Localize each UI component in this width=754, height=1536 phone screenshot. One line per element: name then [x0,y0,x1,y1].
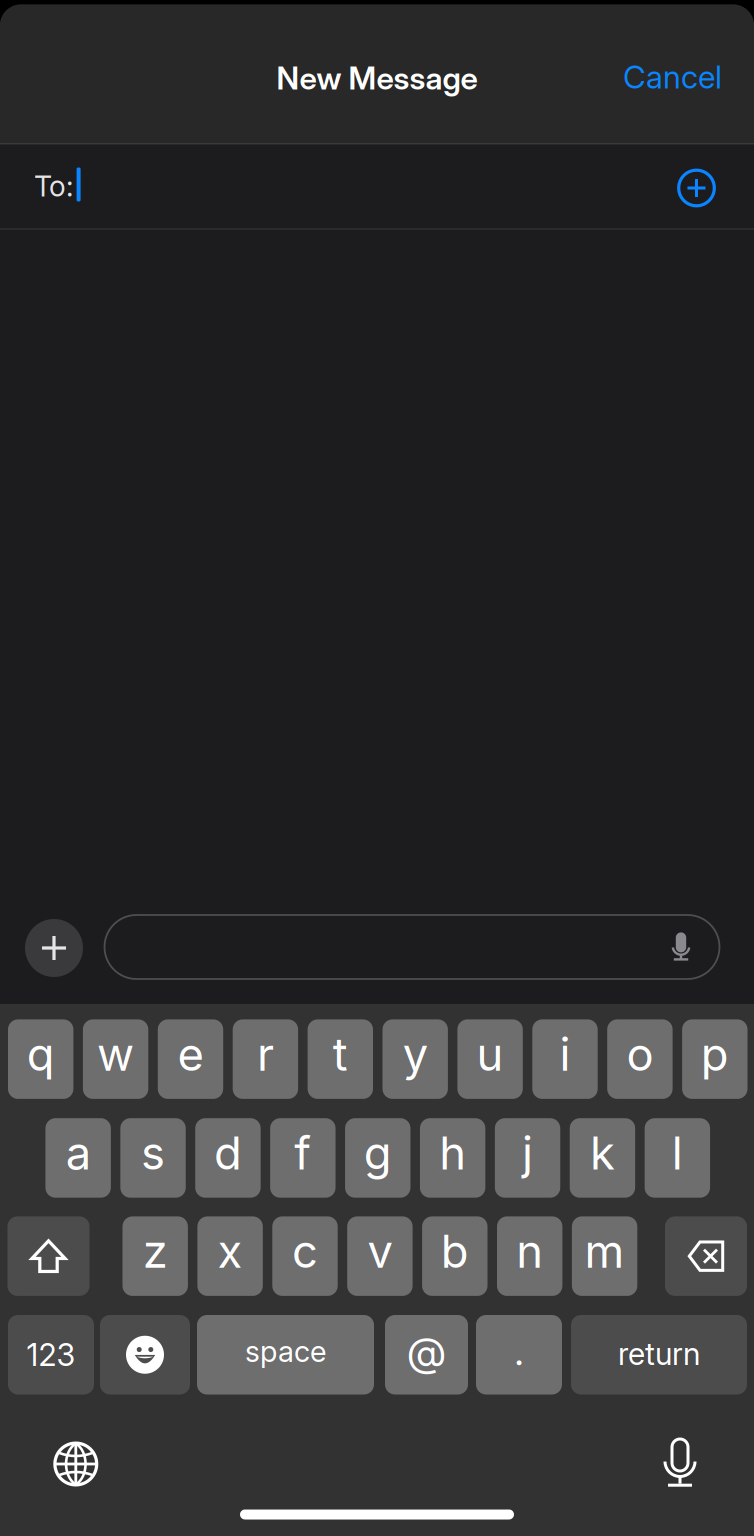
staticText: 123 [26,1336,75,1373]
button[interactable]: . [476,1315,562,1394]
staticText: p [701,1027,729,1082]
staticText: a [66,1125,91,1180]
button[interactable]: o [607,1019,673,1099]
staticText: space [245,1333,326,1369]
button[interactable]: @ [385,1315,468,1394]
button[interactable]: n [497,1216,562,1296]
button[interactable]: b [422,1216,487,1296]
button[interactable]: u [457,1019,523,1099]
staticText: x [218,1224,243,1279]
button[interactable]: a [45,1118,111,1198]
button[interactable]: d [195,1118,261,1198]
button[interactable]: Emoji [100,1315,190,1394]
button[interactable]: Message [104,915,719,979]
staticText: New Message [276,59,477,97]
staticText: . [514,1327,523,1375]
staticText: d [214,1125,242,1180]
button[interactable]: c [272,1216,338,1296]
staticText: b [441,1224,469,1279]
button[interactable]: q [8,1019,73,1099]
button[interactable]: l [645,1118,710,1198]
button[interactable]: y [382,1019,448,1099]
staticText: q [27,1027,55,1082]
button[interactable]: e [158,1019,223,1099]
staticText: e [177,1027,203,1082]
button[interactable]: Cancel [612,46,732,108]
staticText: s [141,1125,165,1180]
staticText: h [439,1125,466,1180]
button[interactable]: p [682,1019,747,1099]
button[interactable]: t [308,1019,373,1099]
button[interactable]: j [495,1118,560,1198]
staticText: k [590,1125,615,1180]
staticText: u [477,1027,504,1082]
button[interactable]: s [120,1118,186,1198]
button[interactable]: i [532,1019,598,1099]
button[interactable]: Dictate [651,1434,709,1492]
button[interactable]: Shift [7,1216,89,1296]
staticText: v [367,1224,392,1279]
button[interactable]: h [420,1118,485,1198]
staticText: return [618,1335,700,1372]
button[interactable]: x [197,1216,263,1296]
staticText: o [626,1027,653,1082]
staticText: n [516,1224,543,1279]
button[interactable]: v [347,1216,413,1296]
button[interactable]: r [233,1019,298,1099]
button[interactable]: Delete [665,1216,747,1296]
button[interactable]: z [122,1216,188,1296]
staticText: m [585,1224,625,1279]
button[interactable]: Next Keyboard [47,1435,105,1493]
staticText: y [403,1027,428,1082]
staticText: Cancel [623,58,722,96]
button[interactable]: space [197,1315,374,1394]
staticText: @ [407,1328,446,1376]
button[interactable]: Audio Message [660,926,702,968]
staticText: r [257,1027,274,1082]
staticText: i [559,1027,570,1082]
button[interactable]: w [83,1019,148,1099]
button[interactable]: m [572,1216,637,1296]
staticText: z [143,1224,168,1279]
button[interactable]: return [571,1315,747,1394]
button[interactable]: g [345,1118,410,1198]
staticText: c [292,1224,318,1279]
button[interactable]: k [570,1118,635,1198]
staticText: f [294,1125,311,1180]
staticText: w [97,1027,134,1082]
staticText: To: [34,169,73,203]
staticText: t [333,1027,348,1082]
staticText: g [364,1125,392,1180]
button[interactable]: 123 [8,1315,94,1394]
button[interactable]: f [270,1118,336,1198]
button[interactable]: Add Attachment [25,919,83,977]
staticText: j [522,1125,533,1180]
button[interactable]: Add Contact [667,159,725,217]
staticText: l [672,1125,683,1180]
